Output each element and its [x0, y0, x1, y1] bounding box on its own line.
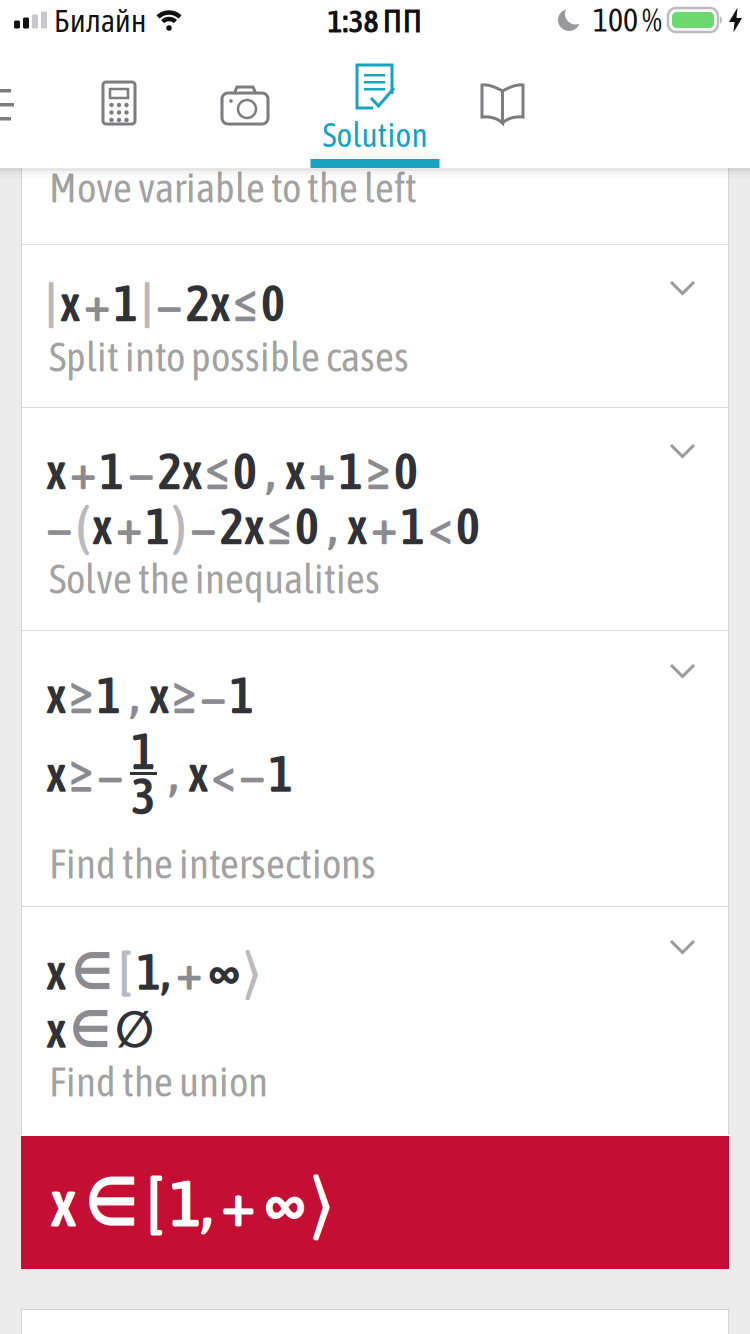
staticText: +: [371, 497, 397, 555]
staticText: ∞: [264, 1164, 306, 1241]
staticText: 100 %: [593, 2, 662, 38]
staticText: |: [46, 274, 56, 332]
staticText: ≤: [234, 274, 257, 332]
staticText: x: [46, 1000, 66, 1059]
staticText: |: [142, 274, 152, 332]
staticText: Split into possible cases: [49, 333, 409, 380]
staticText: <: [429, 497, 452, 555]
staticText: 1: [230, 666, 254, 724]
button[interactable]: Solution: [310, 40, 440, 168]
staticText: 2x: [158, 442, 202, 500]
staticText: 0: [394, 442, 418, 500]
staticText: +: [84, 274, 110, 332]
staticText: 1: [401, 497, 425, 555]
staticText: ⟩: [314, 1164, 330, 1241]
staticText: 1: [114, 274, 138, 332]
staticText: 1:38 ПП: [327, 0, 422, 42]
staticText: −: [200, 666, 226, 724]
staticText: ≤: [206, 442, 229, 500]
staticText: Move variable to the left: [49, 164, 417, 211]
staticText: Solve the inequalities: [49, 555, 380, 602]
staticText: 2x: [186, 274, 230, 332]
button[interactable]: x: [21, 631, 729, 906]
staticText: x: [46, 744, 66, 803]
staticText: 1,: [170, 1164, 213, 1241]
staticText: Solution: [322, 116, 427, 154]
staticText: ≥: [173, 666, 196, 724]
staticText: ≥: [367, 442, 390, 500]
staticText: 0: [456, 497, 480, 555]
button[interactable]: |: [21, 245, 729, 407]
staticText: 1: [100, 442, 124, 500]
button[interactable]: History: [0, 40, 40, 168]
staticText: ,: [130, 666, 139, 724]
button[interactable]: Calculator: [64, 40, 174, 168]
staticText: ∞: [208, 942, 240, 1001]
button[interactable]: x: [21, 907, 729, 1136]
staticText: 2x: [220, 497, 264, 555]
staticText: ∅: [115, 1000, 154, 1059]
staticText: Билайн: [54, 0, 146, 41]
staticText: −: [190, 497, 216, 555]
staticText: 1,: [137, 942, 170, 1001]
staticText: −: [239, 744, 265, 803]
staticText: x: [50, 1164, 77, 1241]
staticText: ,: [266, 442, 275, 500]
staticText: +: [70, 442, 96, 500]
button[interactable]: Glossary: [448, 40, 558, 168]
staticText: <: [212, 744, 235, 803]
staticText: x: [347, 497, 367, 555]
staticText: x: [46, 942, 66, 1001]
staticText: 0: [295, 497, 319, 555]
staticText: x: [188, 744, 208, 803]
staticText: [: [147, 1164, 162, 1241]
staticText: +: [116, 497, 142, 555]
staticText: (: [76, 497, 88, 555]
staticText: 1: [269, 744, 293, 803]
staticText: x: [60, 274, 80, 332]
staticText: 1: [97, 666, 121, 724]
staticText: −: [156, 274, 182, 332]
staticText: ∈: [85, 1164, 139, 1241]
staticText: x: [92, 497, 112, 555]
staticText: 0: [261, 274, 285, 332]
staticText: ≤: [268, 497, 291, 555]
staticText: ⟩: [246, 942, 258, 1001]
staticText: x: [285, 442, 305, 500]
staticText: −: [97, 744, 123, 803]
staticText: −: [46, 497, 72, 555]
staticText: Find the union: [49, 1058, 268, 1105]
staticText: x: [149, 666, 169, 724]
staticText: ,: [328, 497, 337, 555]
staticText: x: [46, 442, 66, 500]
staticText: x: [46, 666, 66, 724]
staticText: +: [309, 442, 335, 500]
staticText: ≥: [70, 666, 93, 724]
staticText: Find the intersections: [49, 840, 376, 887]
staticText: [: [119, 942, 131, 1001]
staticText: ∈: [70, 1000, 111, 1059]
staticText: 1: [146, 497, 170, 555]
staticText: +: [176, 942, 202, 1001]
staticText: ∈: [72, 942, 113, 1001]
staticText: 1: [339, 442, 363, 500]
staticText: +: [221, 1164, 256, 1241]
button[interactable]: Move variable to the left: [21, 168, 729, 244]
button[interactable]: Camera: [190, 40, 300, 168]
button[interactable]: x: [21, 408, 729, 630]
staticText: 0: [233, 442, 257, 500]
staticText: 3: [131, 767, 155, 825]
staticText: ,: [169, 744, 178, 803]
staticText: 1: [131, 722, 155, 780]
staticText: −: [128, 442, 154, 500]
staticText: ): [174, 497, 186, 555]
staticText: ≥: [70, 744, 93, 803]
